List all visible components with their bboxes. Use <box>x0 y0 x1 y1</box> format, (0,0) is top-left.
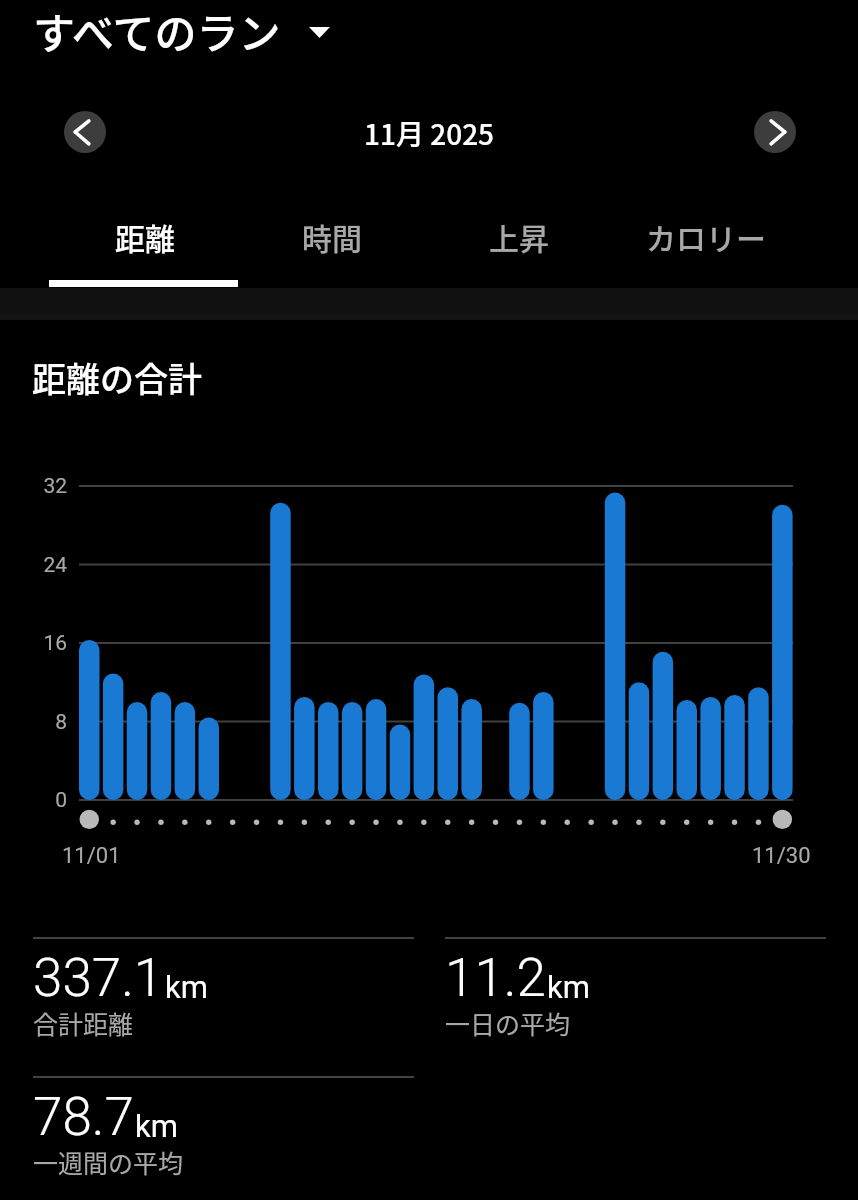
button[interactable]: カロリー <box>612 191 799 285</box>
button[interactable]: Previous month <box>64 111 106 153</box>
staticText: 337.1 <box>33 947 164 1009</box>
button[interactable]: 上昇 <box>425 191 612 285</box>
staticText: 距離 <box>115 215 175 258</box>
button[interactable]: すべてのラン <box>33 0 330 61</box>
staticText: 32 <box>0 474 67 499</box>
staticText: 時間 <box>302 215 362 258</box>
staticText: すべてのラン <box>33 0 281 61</box>
staticText: 11月 2025 <box>364 113 495 154</box>
staticText: 合計距離 <box>33 1005 134 1041</box>
staticText: 一週間の平均 <box>33 1144 184 1180</box>
staticText: 24 <box>0 553 67 578</box>
staticText: km <box>165 969 208 1005</box>
button[interactable]: 距離 <box>51 191 238 285</box>
button[interactable]: 時間 <box>238 191 425 285</box>
staticText: 0 <box>0 788 67 813</box>
staticText: 16 <box>0 631 67 656</box>
button[interactable]: 78.7 <box>33 1076 414 1200</box>
staticText: 11.2 <box>445 947 546 1009</box>
staticText: 11/01 <box>62 843 121 869</box>
button[interactable]: 11.2 <box>445 937 826 1067</box>
button[interactable]: 337.1 <box>33 937 414 1067</box>
staticText: 78.7 <box>33 1086 134 1148</box>
staticText: 8 <box>0 710 67 735</box>
staticText: 上昇 <box>489 215 549 258</box>
staticText: 距離の合計 <box>32 353 202 402</box>
staticText: カロリー <box>646 215 766 258</box>
staticText: km <box>135 1108 178 1144</box>
staticText: 11/30 <box>752 843 811 869</box>
button[interactable]: Next month <box>754 111 796 153</box>
staticText: km <box>547 969 590 1005</box>
staticText: 一日の平均 <box>445 1005 571 1041</box>
